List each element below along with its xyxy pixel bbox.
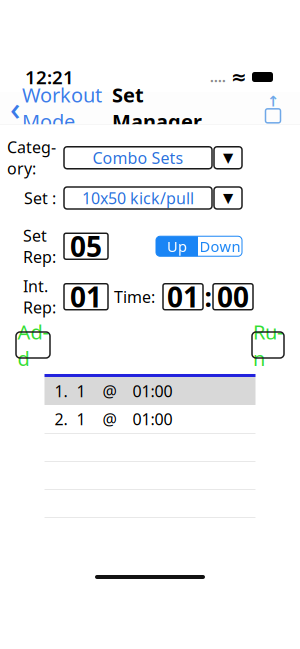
staticText: :: [204, 279, 211, 314]
button[interactable]: Down: [198, 236, 242, 256]
staticText: Category:: [7, 136, 56, 179]
staticText: ▼: [223, 190, 233, 205]
staticText: 01: [167, 278, 199, 315]
staticText: Add: [17, 318, 48, 371]
staticText: Set Manager: [112, 81, 202, 134]
staticText: 01: [70, 278, 102, 315]
button[interactable]: 2.: [44, 405, 255, 433]
staticText: 00: [217, 278, 249, 315]
staticText: Workout Mode: [22, 81, 102, 134]
staticText: Run: [253, 318, 283, 371]
staticText: Int. Rep:: [23, 275, 56, 318]
staticText: Combo Sets: [92, 147, 183, 168]
staticText: 05: [70, 228, 102, 265]
staticText: Down: [199, 236, 240, 256]
staticText: Set Rep:: [23, 225, 56, 267]
button[interactable]: Up: [156, 236, 198, 256]
button[interactable]: Choose Combo Sets: [214, 147, 242, 169]
staticText: ....: [210, 68, 226, 86]
staticText: 12:21: [25, 65, 74, 89]
staticText: 1: [76, 380, 85, 402]
staticText: Time:: [114, 286, 155, 307]
staticText: 10x50 kick/pull: [82, 187, 194, 209]
staticText: @: [102, 380, 116, 402]
staticText: ▼: [223, 150, 233, 165]
button[interactable]: Run: [252, 332, 284, 358]
staticText: 1: [76, 408, 85, 430]
staticText: Up: [167, 236, 187, 256]
button[interactable]: Add: [16, 332, 50, 358]
staticText: ≈: [231, 66, 247, 88]
button[interactable]: Combo Sets: [64, 147, 212, 169]
staticText: ‹: [10, 87, 20, 129]
staticText: 1.: [54, 380, 67, 402]
staticText: ↑: [267, 93, 279, 110]
staticText: @: [102, 408, 116, 430]
button[interactable]: Choose 10x50 kick/pull: [214, 187, 242, 209]
button[interactable]: 10x50 kick/pull: [64, 187, 212, 209]
staticText: 01:00: [132, 380, 172, 402]
button[interactable]: ‹: [10, 81, 102, 134]
staticText: Set :: [24, 187, 56, 209]
staticText: 01:00: [132, 408, 172, 430]
staticText: 2.: [54, 408, 67, 430]
button[interactable]: Share: [260, 94, 286, 122]
button[interactable]: 1.: [44, 377, 255, 405]
